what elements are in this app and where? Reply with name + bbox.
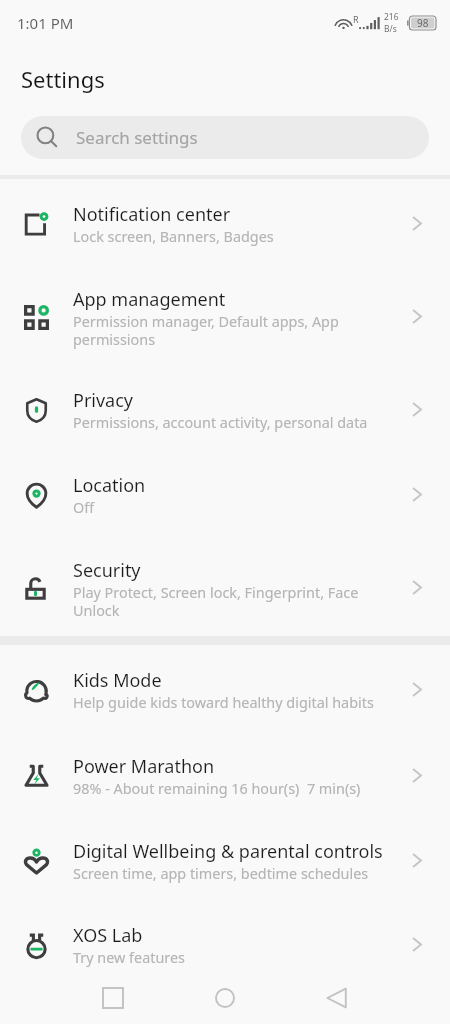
staticText: Location — [73, 473, 146, 498]
button[interactable]: Security — [0, 535, 450, 636]
staticText: 98 — [417, 16, 429, 30]
staticText: R — [353, 13, 359, 25]
staticText: App management — [73, 287, 226, 312]
staticText: 1:01 PM — [17, 13, 74, 33]
button[interactable]: Power Marathon — [0, 730, 450, 816]
staticText: Off — [73, 498, 95, 518]
staticText: Permissions, account activity, personal … — [73, 413, 368, 433]
staticText: Digital Wellbeing & parental controls — [73, 839, 383, 864]
button[interactable]: Digital Wellbeing & parental controls — [0, 816, 450, 900]
staticText: Search settings — [76, 126, 198, 149]
button[interactable]: Recent apps — [57, 972, 169, 1024]
staticText: Help guide kids toward healthy digital h… — [73, 693, 374, 713]
button[interactable]: Location — [0, 449, 450, 535]
staticText: XOS Lab — [73, 923, 143, 948]
staticText: Screen time, app timers, bedtime schedul… — [73, 864, 369, 884]
staticText: Permission manager, Default apps, App pe… — [73, 312, 386, 349]
button[interactable]: App management — [0, 264, 450, 365]
staticText: 98% - About remaining 16 hour(s) 7 min(s… — [73, 779, 361, 799]
button[interactable]: Home — [169, 972, 281, 1024]
staticText: Power Marathon — [73, 754, 215, 779]
button[interactable]: Search settings — [21, 116, 429, 159]
button[interactable]: Notification center — [0, 179, 450, 264]
staticText: Play Protect, Screen lock, Fingerprint, … — [73, 583, 386, 620]
button[interactable]: XOS Lab — [0, 900, 450, 984]
button[interactable]: Privacy — [0, 365, 450, 449]
staticText: Security — [73, 558, 141, 583]
staticText: Try new features — [73, 948, 185, 968]
staticText: 216 — [384, 11, 399, 23]
staticText: Privacy — [73, 388, 134, 413]
button[interactable]: Kids Mode — [0, 645, 450, 730]
staticText: B/s — [384, 23, 397, 35]
staticText: Lock screen, Banners, Badges — [73, 227, 274, 247]
button[interactable]: Back — [281, 972, 393, 1024]
staticText: Kids Mode — [73, 668, 162, 693]
staticText: Settings — [21, 64, 105, 94]
staticText: Notification center — [73, 202, 231, 227]
